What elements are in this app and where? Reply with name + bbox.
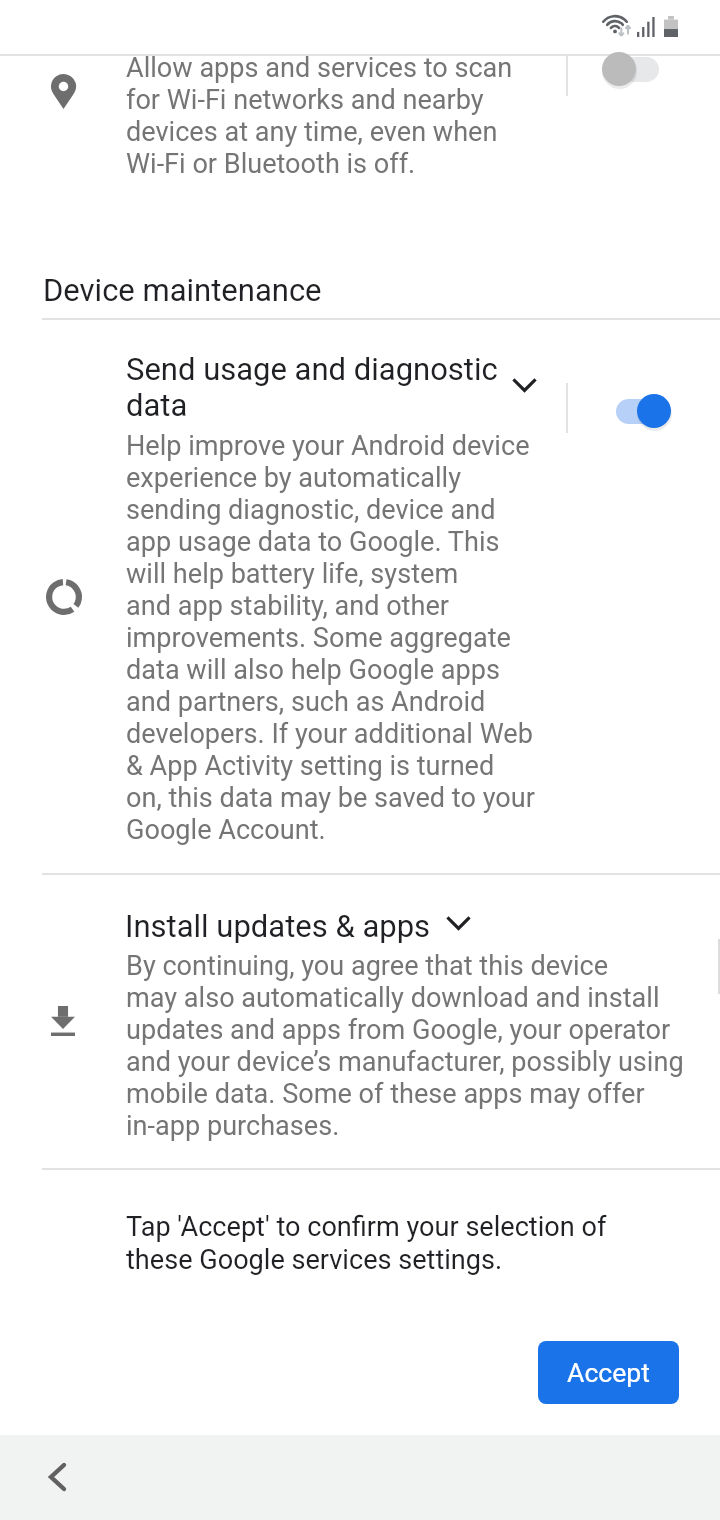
staticText: Tap 'Accept' to confirm your selection o… [126,1211,607,1275]
staticText: Send usage and diagnostic data [126,351,498,423]
button[interactable]: Back [21,1443,93,1511]
staticText: Install updates & apps [125,908,431,944]
button[interactable]: Usage and diagnostics toggle [602,394,662,438]
staticText: Device maintenance [43,272,322,308]
button[interactable]: Location scanning toggle [602,52,662,96]
staticText: Accept [567,1357,650,1388]
button[interactable]: Accept [538,1341,679,1404]
staticText: Help improve your Android device experie… [126,430,535,846]
staticText: Allow apps and services to scan for Wi-F… [126,52,513,180]
staticText: By continuing, you agree that this devic… [126,950,684,1142]
